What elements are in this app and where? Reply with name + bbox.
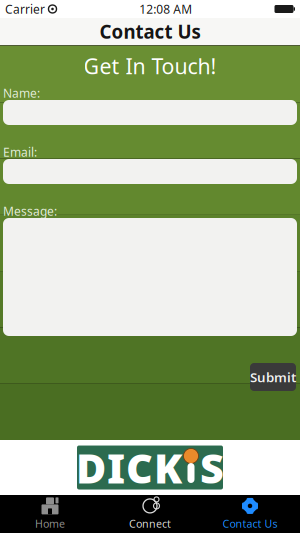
staticText	[45, 1, 48, 17]
staticText: Carrier	[5, 1, 45, 17]
staticText: Connect	[129, 516, 171, 531]
button[interactable]: Submit	[250, 363, 296, 391]
staticText: K	[154, 440, 182, 495]
staticText: Home	[35, 516, 65, 531]
staticText: D	[76, 440, 106, 495]
staticText: S	[200, 440, 224, 495]
staticText: I	[107, 440, 125, 495]
staticText: Message:	[3, 203, 57, 219]
staticText: Get In Touch!	[83, 52, 216, 80]
staticText: C	[126, 440, 153, 495]
button[interactable]: Connect	[100, 495, 200, 533]
staticText: Submit	[250, 368, 296, 386]
staticText: 12:08 AM	[139, 1, 192, 17]
staticText: Email:	[3, 144, 37, 160]
button[interactable]: Home	[0, 495, 100, 533]
staticText: Contact Us	[222, 516, 277, 531]
staticText: Name:	[3, 85, 40, 101]
staticText: Contact Us	[99, 19, 200, 44]
button[interactable]: Contact Us	[200, 495, 300, 533]
